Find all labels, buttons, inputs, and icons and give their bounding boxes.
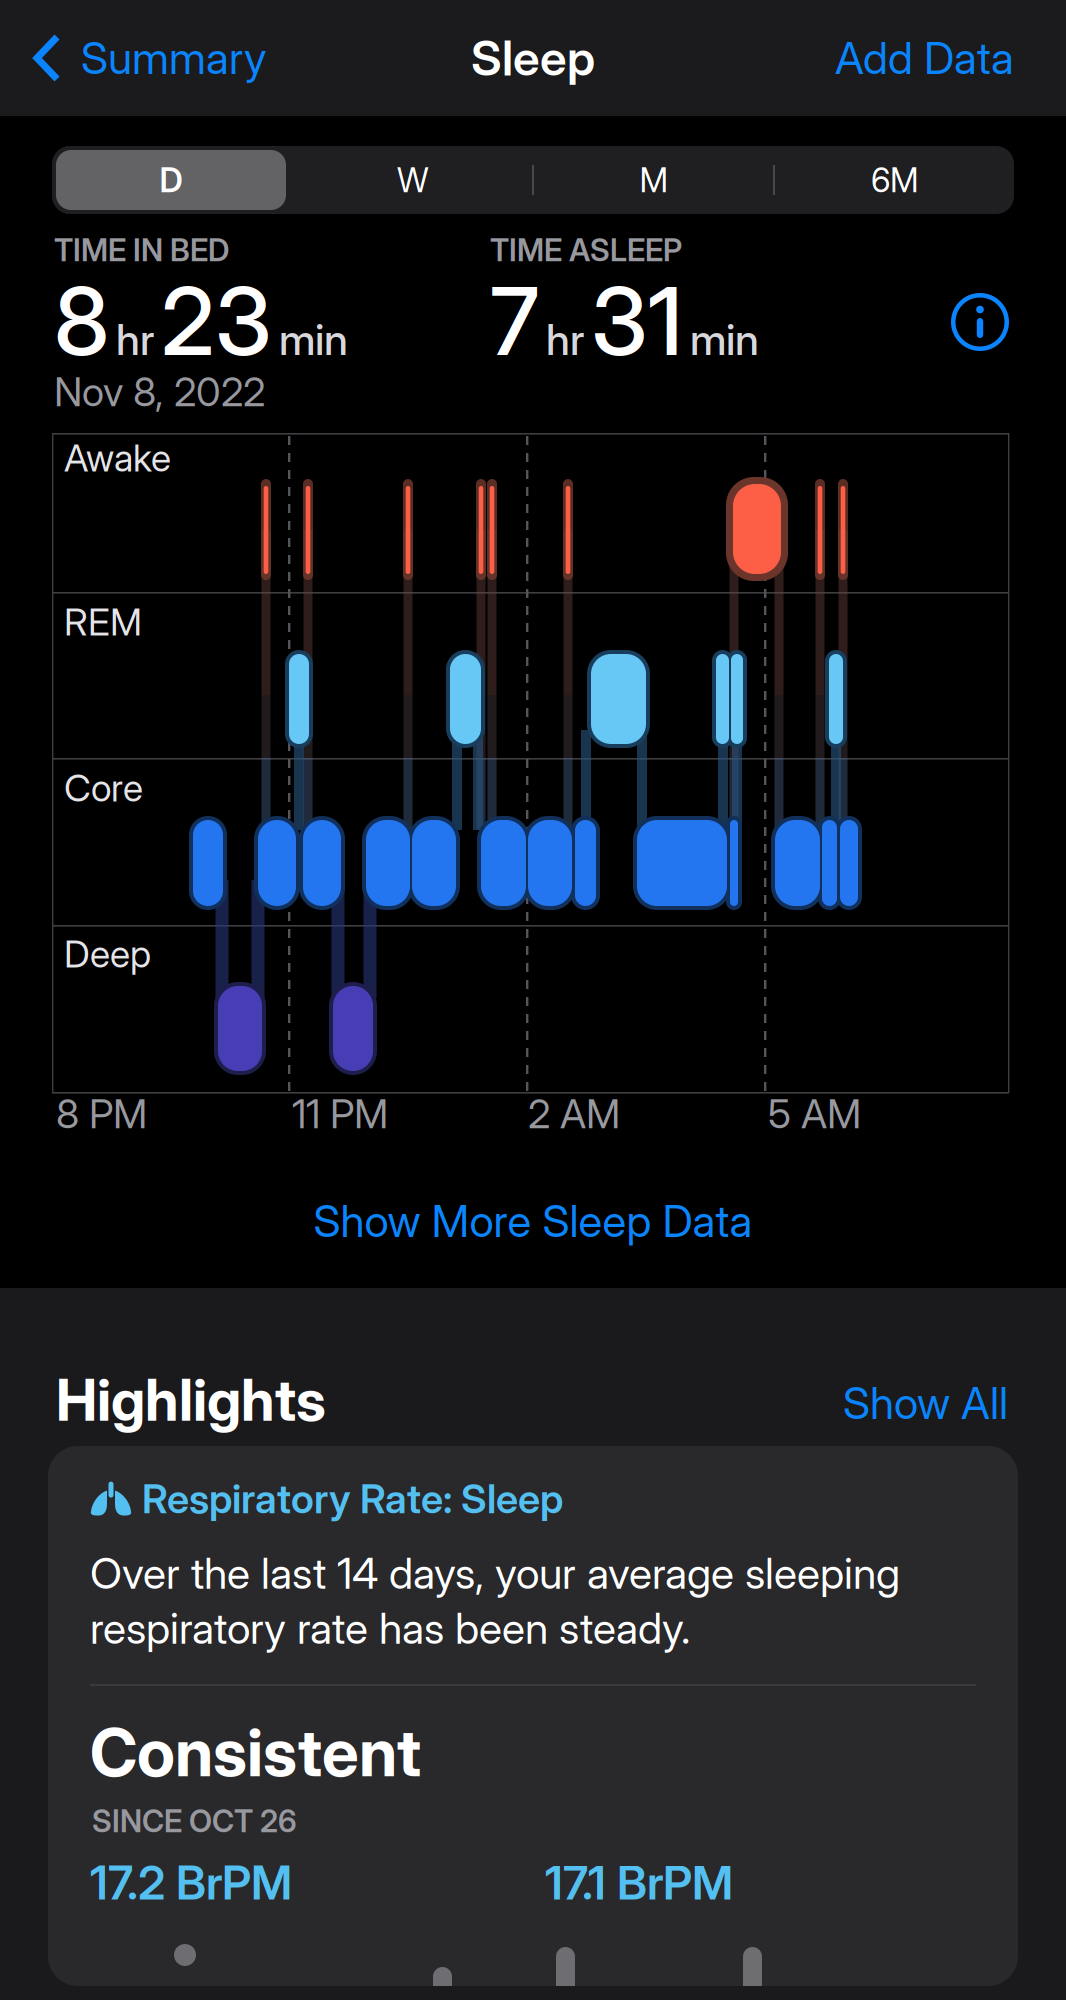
button[interactable]: M [539,146,769,214]
staticText: TIME ASLEEP [490,232,682,268]
staticText: 17.2 BrPM [90,1855,292,1910]
button[interactable]: Show All [708,1373,1008,1433]
staticText: M [639,160,668,200]
staticText: SINCE OCT 26 [92,1803,297,1839]
staticText: Summary [81,32,267,84]
button[interactable]: D [56,150,286,210]
staticText: 5 AM [768,1090,861,1137]
staticText: D [159,160,182,200]
staticText: 31 [591,266,683,376]
staticText: Sleep [471,30,595,86]
button[interactable]: W [298,146,528,214]
staticText: 7 [490,266,539,376]
staticText: Deep [64,932,151,976]
staticText: Core [64,766,143,810]
staticText: REM [64,600,142,644]
staticText: W [397,160,429,200]
staticText: 11 PM [292,1090,388,1137]
staticText: Respiratory Rate: Sleep [142,1475,563,1522]
button[interactable]: Info [951,293,1009,351]
button[interactable]: Summary [33,0,267,116]
staticText: Over the last 14 days, your average slee… [90,1548,900,1598]
staticText: Add Data [835,32,1014,84]
button[interactable]: Show More Sleep Data [0,1191,1066,1251]
staticText: min [279,314,348,365]
staticText: hr [546,314,584,365]
staticText: hr [116,314,154,365]
staticText: Awake [64,436,171,480]
staticText: 23 [161,266,272,376]
staticText: respiratory rate has been steady. [90,1603,690,1653]
staticText: 8 [54,266,109,376]
staticText: 6M [871,160,919,200]
staticText: Show More Sleep Data [313,1195,752,1247]
staticText: Show All [843,1377,1008,1429]
button[interactable]: Respiratory Rate: Sleep [48,1446,1018,1986]
staticText: Consistent [90,1714,421,1791]
staticText: 17.1 BrPM [545,1855,733,1910]
staticText: min [690,314,759,365]
staticText: 8 PM [56,1090,147,1137]
staticText: TIME IN BED [54,232,229,268]
staticText: Nov 8, 2022 [54,368,265,415]
button[interactable]: Add Data [714,0,1014,116]
button[interactable]: 6M [780,146,1010,214]
staticText: Highlights [56,1366,326,1434]
staticText: 2 AM [528,1090,620,1137]
